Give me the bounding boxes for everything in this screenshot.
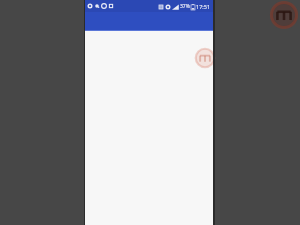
staticText: 17:51 [196, 3, 211, 10]
staticText: 37% [180, 3, 190, 10]
